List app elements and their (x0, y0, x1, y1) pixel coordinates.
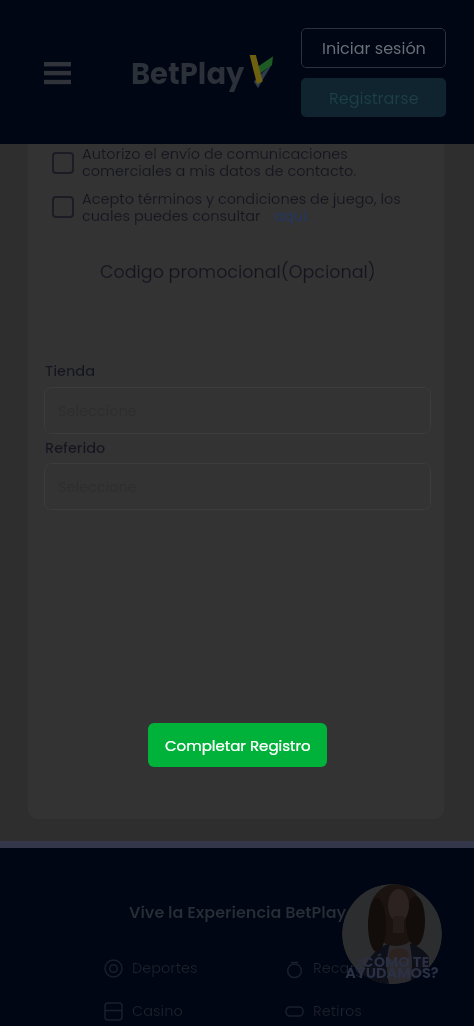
button[interactable]: ¿Cómo te ayudamos? (342, 884, 442, 984)
staticText: Registrarse (329, 87, 419, 109)
staticText: Referido (45, 438, 106, 458)
staticText: BetPlay (131, 54, 245, 95)
staticText: ¿CÓMO TE AYUDAMOS? (342, 952, 442, 984)
button[interactable]: Casino (104, 999, 183, 1023)
staticText: Codigo promocional(Opcional) (100, 260, 376, 285)
button[interactable]: Menú (36, 54, 79, 92)
button[interactable]: Completar Registro (148, 723, 327, 767)
button[interactable]: Registrarse (301, 78, 446, 117)
button[interactable]: Retiros (285, 999, 362, 1023)
staticText: Recargas (313, 958, 382, 978)
staticText: Iniciar sesión (322, 37, 426, 59)
staticText: Tienda (45, 361, 96, 381)
staticText: Deportes (132, 958, 198, 978)
button[interactable]: Deportes (104, 956, 198, 980)
staticText: Retiros (313, 1001, 362, 1021)
button[interactable]: Casilla de verificación (52, 196, 74, 218)
staticText: Acepto términos y condiciones de juego, … (82, 189, 401, 226)
button[interactable]: Iniciar sesión (301, 28, 446, 68)
staticText: Casino (132, 1001, 183, 1021)
button[interactable]: aqui. (274, 206, 310, 226)
staticText: Completar Registro (165, 735, 311, 756)
staticText: Autorizo el envío de comunicaciones come… (82, 144, 357, 181)
button[interactable]: Recargas (285, 956, 382, 980)
staticText: Vive la Experiencia BetPlay (129, 901, 347, 923)
button[interactable]: Casilla de verificación (52, 152, 74, 174)
